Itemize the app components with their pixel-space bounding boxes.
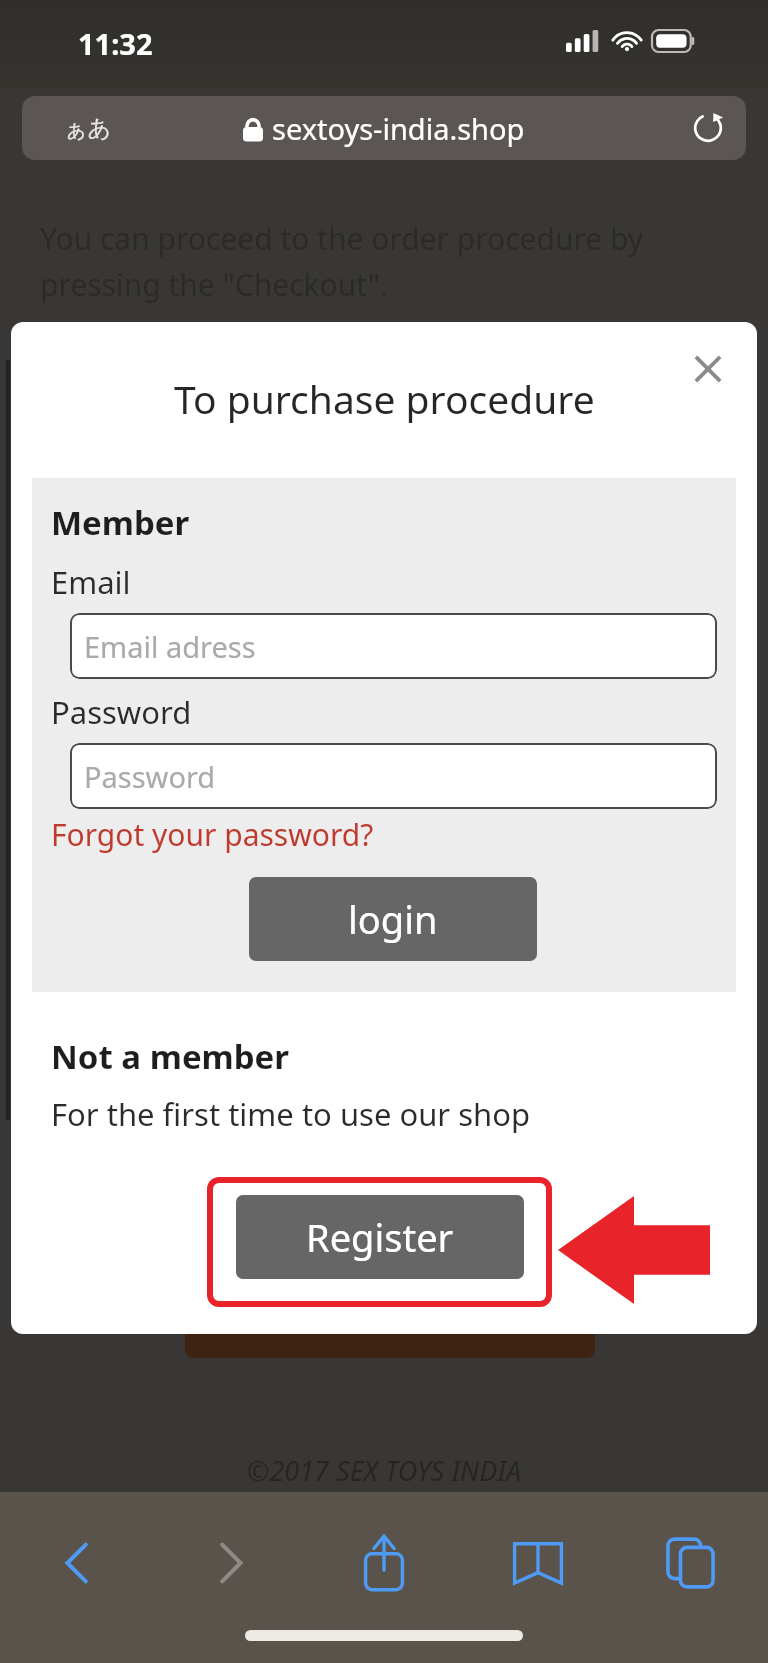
staticText: Password xyxy=(84,757,216,796)
staticText: For the first time to use our shop xyxy=(51,1093,531,1135)
button[interactable]: Forgot your password? xyxy=(51,814,374,855)
staticText: To purchase procedure xyxy=(174,372,595,425)
button[interactable]: Bookmarks xyxy=(495,1520,581,1606)
button[interactable]: Register xyxy=(236,1195,524,1279)
button[interactable]: Email adress xyxy=(70,613,717,679)
staticText: login xyxy=(348,893,438,945)
button[interactable]: Password xyxy=(70,743,717,809)
button[interactable]: Close xyxy=(681,342,735,396)
staticText: Password xyxy=(51,691,192,733)
button[interactable]: Share xyxy=(341,1520,427,1606)
staticText: Email xyxy=(51,561,131,603)
staticText: Email adress xyxy=(84,627,256,666)
button[interactable]: login xyxy=(249,877,537,961)
other: Arrow pointing to Register button xyxy=(558,1196,710,1304)
staticText: ©2017 SEX TOYS INDIA xyxy=(247,1452,522,1489)
button[interactable]: Forward xyxy=(188,1520,274,1606)
staticText: pressing the "Checkout". xyxy=(40,264,388,305)
staticText: You can proceed to the order procedure b… xyxy=(40,218,644,259)
staticText: Forgot your password? xyxy=(51,814,374,855)
other: Reload xyxy=(692,112,724,144)
staticText: Not a member xyxy=(51,1034,290,1079)
staticText: Member xyxy=(51,500,190,545)
button[interactable]: Tabs xyxy=(648,1520,734,1606)
button[interactable]: ぁあ xyxy=(22,96,746,160)
staticText: 11:32 xyxy=(78,24,153,63)
staticText: Register xyxy=(306,1211,454,1263)
staticText: sextoys-india.shop xyxy=(272,109,525,148)
button[interactable]: Back xyxy=(34,1520,120,1606)
staticText: ぁあ xyxy=(64,114,112,143)
